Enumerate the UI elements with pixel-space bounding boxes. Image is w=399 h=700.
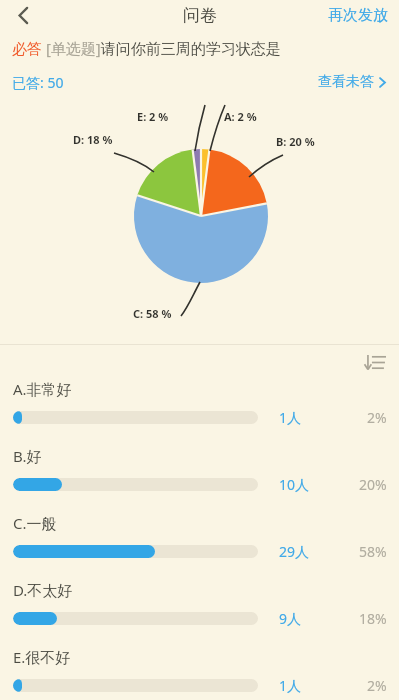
button[interactable]: B.好	[0, 446, 399, 513]
staticText: C: 58 %	[133, 306, 172, 321]
staticText: 必答 [单选题]请问你前三周的学习状态是	[12, 38, 281, 58]
staticText: E.很不好	[13, 647, 71, 667]
button[interactable]: A.非常好	[0, 379, 399, 446]
button[interactable]: 查看未答	[314, 69, 390, 95]
staticText: 10人	[279, 475, 310, 494]
staticText: C.一般	[13, 513, 57, 533]
staticText: 2%	[367, 408, 387, 427]
button[interactable]: Back	[0, 0, 46, 31]
staticText: 已答: 50	[12, 73, 64, 92]
staticText: 问卷	[183, 5, 217, 26]
staticText: B: 20 %	[276, 134, 315, 149]
staticText: 18%	[359, 609, 387, 628]
staticText: D.不太好	[13, 580, 73, 600]
button[interactable]: E.很不好	[0, 647, 399, 700]
staticText: B.好	[13, 446, 42, 466]
staticText: 29人	[279, 542, 310, 561]
staticText: 再次发放	[328, 6, 388, 25]
staticText: 2%	[367, 676, 387, 695]
button[interactable]: D.不太好	[0, 580, 399, 647]
button[interactable]: 再次发放	[317, 1, 399, 30]
staticText: 9人	[279, 609, 302, 628]
staticText: A: 2 %	[224, 109, 257, 124]
button[interactable]: C.一般	[0, 513, 399, 580]
staticText: A.非常好	[13, 379, 72, 399]
staticText: 查看未答	[318, 73, 374, 91]
staticText: E: 2 %	[137, 109, 169, 124]
button[interactable]: Sort	[358, 345, 392, 379]
staticText: 20%	[359, 475, 387, 494]
staticText: 1人	[279, 408, 302, 427]
staticText: 58%	[359, 542, 387, 561]
staticText: 1人	[279, 676, 302, 695]
staticText: D: 18 %	[73, 132, 113, 147]
